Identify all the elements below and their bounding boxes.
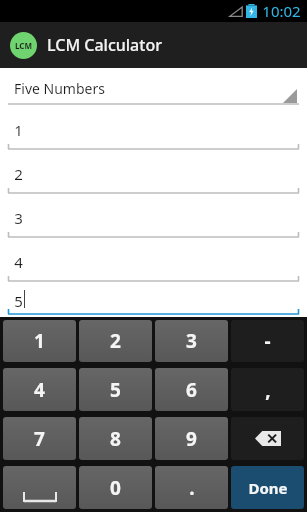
button[interactable]: -: [231, 320, 304, 362]
button[interactable]: 3: [155, 320, 228, 362]
button[interactable]: 1: [3, 320, 76, 362]
button[interactable]: 7: [3, 417, 76, 460]
button[interactable]: 0: [79, 466, 152, 509]
staticText: 10:02: [262, 1, 301, 21]
staticText: 1: [14, 120, 23, 140]
button[interactable]: Five Numbers: [0, 68, 307, 108]
staticText: 9: [186, 426, 197, 452]
button[interactable]: 5: [0, 284, 307, 317]
staticText: ,: [265, 377, 271, 403]
staticText: 2: [110, 328, 121, 354]
staticText: 3: [186, 328, 197, 354]
button[interactable]: Backspace: [231, 417, 304, 460]
staticText: 5: [14, 291, 23, 311]
button[interactable]: 4: [0, 240, 307, 284]
staticText: Done: [248, 478, 288, 498]
button[interactable]: 3: [0, 196, 307, 240]
button[interactable]: 2: [79, 320, 152, 362]
button[interactable]: 8: [79, 417, 152, 460]
staticText: 1: [34, 328, 45, 354]
button[interactable]: 9: [155, 417, 228, 460]
button[interactable]: Space: [3, 466, 76, 509]
staticText: .: [189, 475, 195, 501]
button[interactable]: Done: [231, 466, 304, 509]
button[interactable]: ,: [231, 368, 304, 411]
button[interactable]: 5: [79, 368, 152, 411]
staticText: LCM: [15, 40, 32, 51]
staticText: 5: [110, 377, 121, 403]
staticText: 6: [186, 377, 197, 403]
button[interactable]: 4: [3, 368, 76, 411]
staticText: -: [264, 328, 271, 354]
staticText: 8: [110, 426, 121, 452]
staticText: LCM Calculator: [47, 34, 162, 56]
staticText: 0: [110, 475, 121, 501]
button[interactable]: .: [155, 466, 228, 509]
staticText: 4: [34, 377, 45, 403]
staticText: 7: [34, 426, 45, 452]
staticText: 3: [14, 208, 23, 228]
staticText: 2: [14, 164, 23, 184]
button[interactable]: 6: [155, 368, 228, 411]
staticText: 4: [14, 252, 23, 272]
button[interactable]: 2: [0, 152, 307, 196]
button[interactable]: 1: [0, 108, 307, 152]
staticText: Five Numbers: [14, 79, 105, 98]
